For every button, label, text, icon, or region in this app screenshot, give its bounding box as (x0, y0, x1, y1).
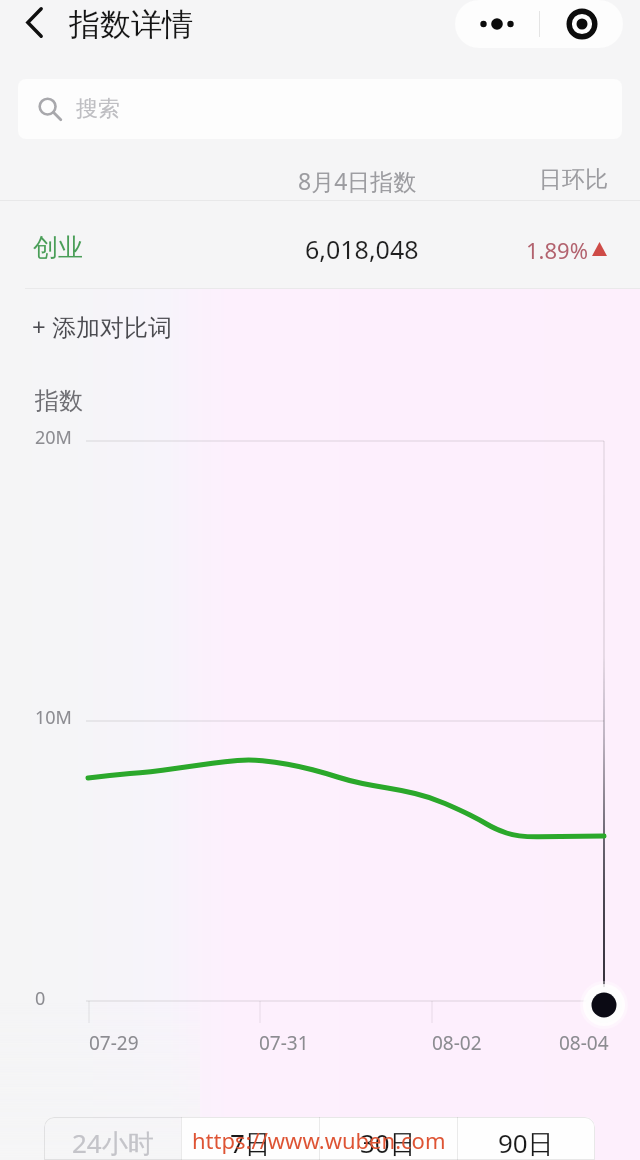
staticText: 10M (35, 705, 72, 730)
staticText: 日环比 (539, 165, 608, 194)
staticText: + 添加对比词 (32, 310, 172, 343)
button[interactable]: Close mini program (540, 0, 623, 48)
staticText: https://www.wuben.com (192, 1125, 446, 1155)
staticText: 08-02 (432, 1030, 482, 1056)
button[interactable]: 7日 (181, 1117, 319, 1160)
staticText: 8月4日指数 (298, 165, 417, 196)
staticText: 6,018,048 (305, 232, 419, 266)
staticText: 90日 (498, 1125, 554, 1160)
staticText: 指数详情 (69, 5, 193, 44)
staticText: 0 (35, 986, 46, 1011)
staticText: 指数 (35, 386, 83, 416)
button[interactable]: 24小时 (44, 1117, 181, 1160)
button[interactable]: 创业 (0, 210, 640, 288)
button[interactable]: 30日 (319, 1117, 457, 1160)
button[interactable]: Back (12, 0, 56, 44)
staticText: 07-29 (89, 1030, 139, 1056)
staticText: 创业 (33, 232, 83, 263)
staticText: 30日 (360, 1125, 416, 1160)
staticText: 24小时 (72, 1125, 154, 1160)
staticText: 07-31 (259, 1030, 309, 1056)
button[interactable]: More options (455, 0, 539, 48)
button[interactable]: 搜索 (18, 79, 622, 139)
button[interactable]: 90日 (457, 1117, 595, 1160)
button[interactable]: + 添加对比词 (0, 300, 640, 356)
staticText: 20M (35, 425, 72, 450)
staticText: 1.89% (526, 235, 588, 265)
staticText: 7日 (230, 1125, 271, 1160)
staticText: 搜索 (76, 95, 120, 123)
staticText: 08-04 (559, 1030, 609, 1056)
